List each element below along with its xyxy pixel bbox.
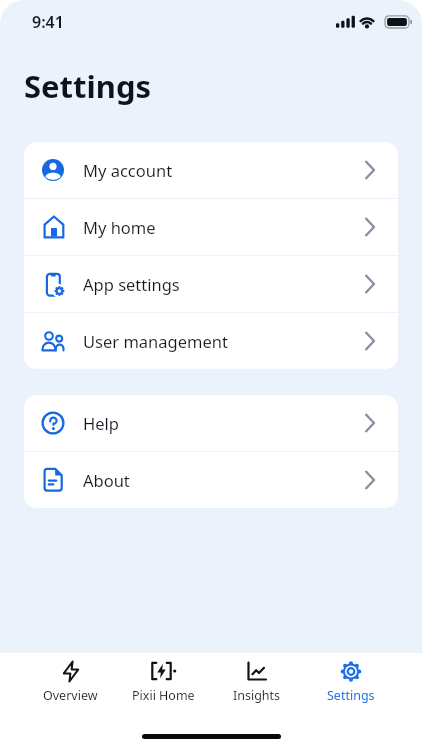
button[interactable]: Help: [24, 395, 398, 451]
button[interactable]: Pixii Home: [117, 660, 210, 704]
button[interactable]: Insights: [210, 660, 304, 704]
staticText: 9:41: [32, 11, 64, 33]
button[interactable]: About: [24, 452, 398, 508]
button[interactable]: My account: [24, 142, 398, 198]
staticText: Settings: [24, 65, 152, 107]
staticText: Pixii Home: [132, 687, 195, 704]
button[interactable]: User management: [24, 313, 398, 369]
staticText: About: [83, 469, 130, 491]
button[interactable]: App settings: [24, 256, 398, 312]
button[interactable]: Overview: [24, 660, 117, 704]
staticText: Insights: [233, 687, 281, 704]
staticText: Help: [83, 412, 119, 434]
button[interactable]: Settings: [304, 660, 398, 704]
staticText: My account: [83, 159, 173, 181]
staticText: App settings: [83, 273, 180, 295]
staticText: User management: [83, 330, 228, 352]
staticText: Overview: [43, 687, 98, 704]
staticText: Settings: [327, 687, 375, 704]
staticText: My home: [83, 216, 156, 238]
button[interactable]: My home: [24, 199, 398, 255]
